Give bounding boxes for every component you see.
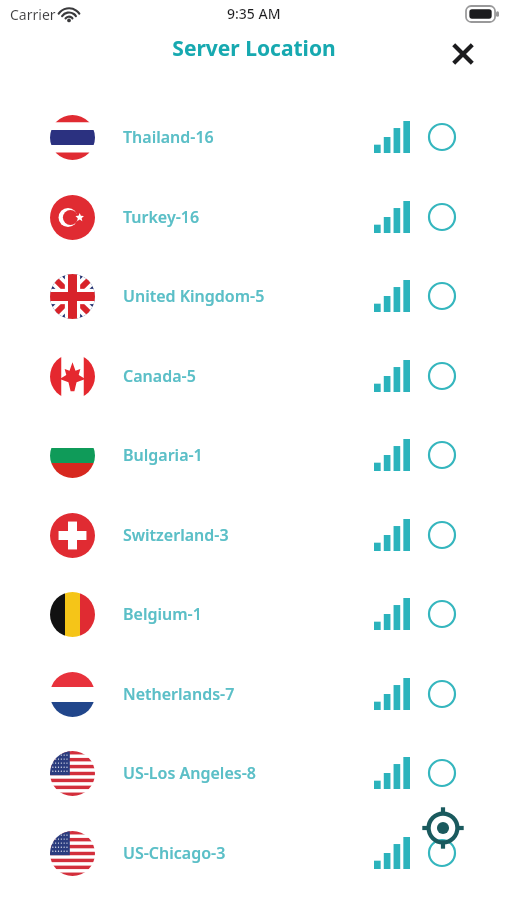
button[interactable]: Turkey-16 [0,177,507,257]
button[interactable]: Belgium-1 [0,574,507,654]
staticText: Thailand-16 [123,126,214,148]
staticText: Bulgaria-1 [123,444,203,466]
button[interactable]: Canada-5 [0,336,507,416]
staticText: 9:35 AM [227,4,281,23]
button[interactable]: Close [443,34,483,74]
button[interactable]: United Kingdom-5 [0,256,507,336]
button[interactable]: Thailand-16 [0,97,507,177]
staticText: Switzerland-3 [123,524,229,546]
other: Current location [423,808,463,848]
staticText: Canada-5 [123,365,196,387]
staticText: US-Los Angeles-8 [123,762,256,784]
staticText: Turkey-16 [123,206,200,228]
staticText: US-Chicago-3 [123,842,226,864]
staticText: United Kingdom-5 [123,285,265,307]
button[interactable]: US-Los Angeles-8 [0,733,507,813]
button[interactable]: Netherlands-7 [0,654,507,734]
staticText: Carrier [10,5,56,24]
button[interactable]: US-Chicago-3 [0,813,507,893]
staticText: Netherlands-7 [123,683,235,705]
button[interactable]: Switzerland-3 [0,495,507,575]
staticText: Server Location [172,34,336,63]
button[interactable]: Bulgaria-1 [0,415,507,495]
staticText: Belgium-1 [123,603,202,625]
